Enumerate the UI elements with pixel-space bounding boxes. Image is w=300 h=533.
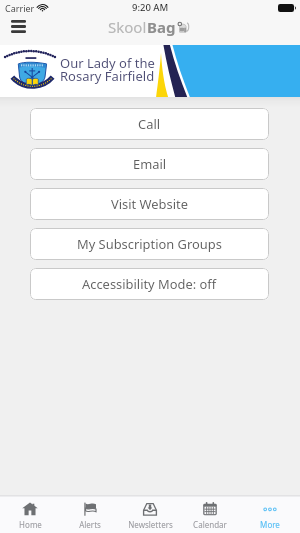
staticText: Visit Website xyxy=(111,195,188,213)
button[interactable]: Accessibility Mode: off xyxy=(30,268,269,300)
button[interactable]: Call xyxy=(30,108,269,140)
button[interactable]: My Subscription Groups xyxy=(30,228,269,260)
staticText: Carrier xyxy=(5,2,35,14)
staticText: Skool xyxy=(108,17,147,37)
button[interactable]: Email xyxy=(30,148,269,180)
staticText: Newsletters xyxy=(128,519,173,530)
staticText: 9:20 AM xyxy=(132,1,169,14)
button[interactable]: Newsletters xyxy=(120,497,180,533)
staticText: Home xyxy=(19,519,42,530)
button[interactable]: Open navigation menu xyxy=(0,13,36,40)
staticText: My Subscription Groups xyxy=(77,235,222,253)
button[interactable]: Alerts xyxy=(60,497,120,533)
staticText: Calendar xyxy=(193,519,227,530)
button[interactable]: Calendar xyxy=(180,497,240,533)
staticText: Accessibility Mode: off xyxy=(82,275,217,293)
staticText: Alerts xyxy=(79,519,101,530)
staticText: Email xyxy=(133,155,167,173)
staticText: Call xyxy=(138,115,161,133)
staticText: Bag xyxy=(147,17,176,37)
button[interactable]: Home xyxy=(0,497,60,533)
staticText: Our Lady of the Rosary Fairfield xyxy=(60,54,155,85)
button[interactable]: Visit Website xyxy=(30,188,269,220)
button[interactable]: More xyxy=(240,497,300,533)
staticText: More xyxy=(260,519,280,530)
